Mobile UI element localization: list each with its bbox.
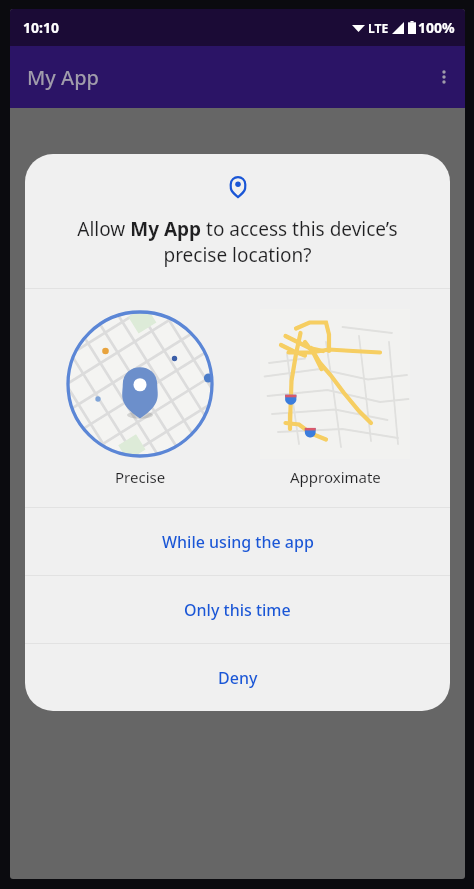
staticText: LTE xyxy=(368,20,389,36)
staticText: Approximate xyxy=(290,467,381,487)
staticText: Deny xyxy=(218,667,258,689)
staticText: Precise xyxy=(115,467,166,487)
button[interactable]: While using the app xyxy=(25,508,450,575)
button[interactable]: Deny xyxy=(25,644,450,711)
button[interactable]: Precise xyxy=(60,309,220,487)
staticText: 100% xyxy=(418,18,455,37)
button[interactable]: Approximate xyxy=(255,309,415,487)
staticText: My App xyxy=(27,64,100,91)
button[interactable]: Only this time xyxy=(25,576,450,643)
staticText: Allow My App to access this device’s pre… xyxy=(45,216,430,268)
staticText: 10:10 xyxy=(23,18,59,37)
staticText: While using the app xyxy=(162,531,314,553)
button[interactable]: More options xyxy=(423,56,465,98)
staticText: Only this time xyxy=(184,599,291,621)
